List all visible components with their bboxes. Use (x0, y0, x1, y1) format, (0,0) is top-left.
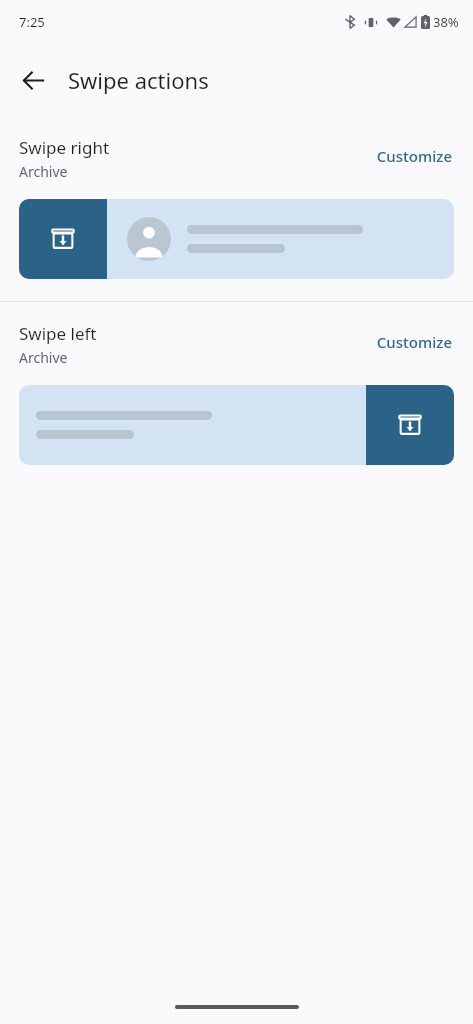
staticText: Customize (376, 332, 452, 352)
button[interactable]: Back (9, 56, 57, 104)
staticText: 38% (433, 13, 459, 31)
staticText: 7:25 (19, 13, 45, 31)
button[interactable]: Customize (374, 144, 454, 168)
button[interactable]: Customize (374, 330, 454, 354)
button[interactable] (19, 385, 454, 465)
button[interactable] (19, 199, 454, 279)
staticText: Swipe actions (68, 65, 209, 95)
staticText: Archive (19, 162, 68, 181)
staticText: Swipe left (19, 322, 97, 345)
staticText: Archive (19, 348, 68, 367)
staticText: Customize (376, 146, 452, 166)
staticText: Swipe right (19, 136, 110, 159)
